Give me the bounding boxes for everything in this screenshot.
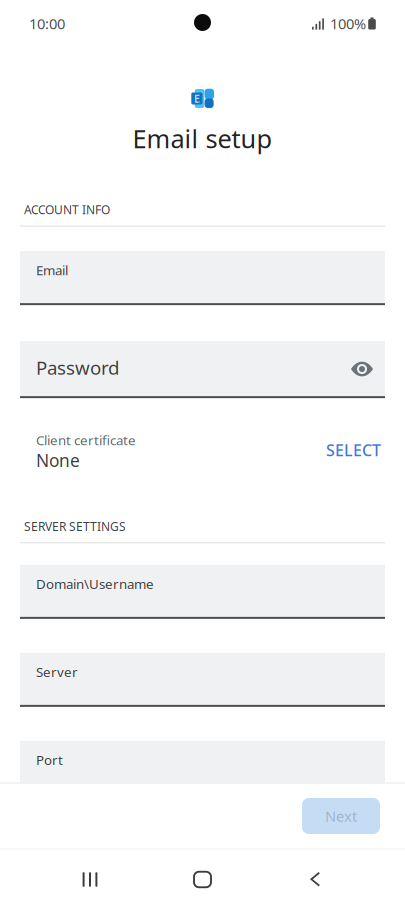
button[interactable]: Back [287,856,343,902]
staticText: ACCOUNT INFO [24,202,110,218]
button[interactable]: Email [20,251,385,305]
button[interactable]: Home [174,856,230,902]
staticText: SELECT [326,439,381,461]
staticText: 10:00 [29,14,65,33]
button[interactable]: SELECT [314,400,385,482]
button[interactable]: Recent apps [62,856,118,902]
staticText: None [36,449,80,472]
staticText: Email [36,261,68,279]
button[interactable]: Port [20,741,385,795]
staticText: Next [325,806,357,826]
staticText: Domain\Username [36,575,154,593]
staticText: SERVER SETTINGS [24,518,126,534]
staticText: Server [36,663,78,681]
button[interactable]: Next [302,798,380,834]
staticText: 100% [330,14,366,33]
staticText: Password [36,355,119,380]
staticText: Client certificate [36,431,136,449]
button[interactable]: Domain\Username [20,565,385,619]
staticText: Port [36,751,63,769]
button[interactable]: Password [20,341,385,398]
button[interactable]: Server [20,653,385,707]
staticText: E [194,91,200,106]
button[interactable]: Client certificate [20,398,144,484]
staticText: Email setup [132,121,272,155]
